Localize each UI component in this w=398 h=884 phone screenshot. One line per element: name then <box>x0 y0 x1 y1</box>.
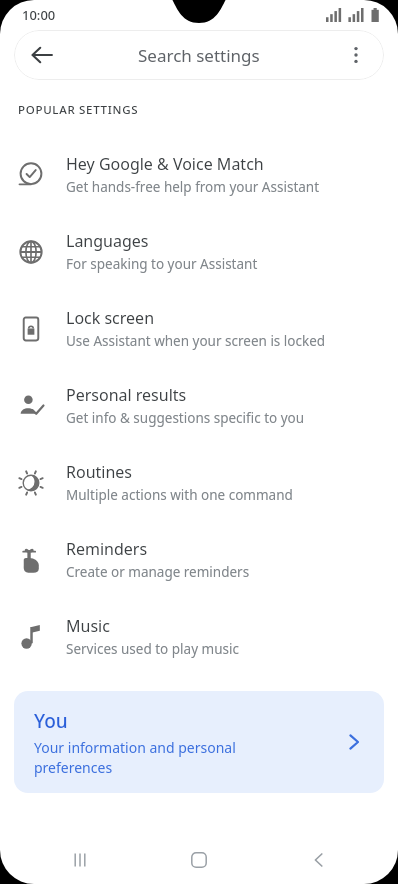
button[interactable]: Languages <box>0 213 398 290</box>
button[interactable]: Back <box>279 836 359 884</box>
staticText: Hey Google & Voice Match <box>66 153 264 175</box>
button[interactable]: Routines <box>0 444 398 521</box>
button[interactable]: Reminders <box>0 521 398 598</box>
button[interactable]: You <box>14 691 384 793</box>
button[interactable]: Back <box>14 30 384 80</box>
staticText: POPULAR SETTINGS <box>18 102 139 118</box>
staticText: Routines <box>66 461 133 483</box>
staticText: Multiple actions with one command <box>66 486 293 504</box>
staticText: You <box>34 708 68 734</box>
staticText: Personal results <box>66 384 187 406</box>
button[interactable]: Personal results <box>0 367 398 444</box>
staticText: For speaking to your Assistant <box>66 255 258 273</box>
button[interactable]: Home <box>159 836 239 884</box>
button[interactable]: Back <box>20 33 64 77</box>
button[interactable]: Recent apps <box>40 836 120 884</box>
staticText: Languages <box>66 230 149 252</box>
other: Open You settings <box>344 732 364 752</box>
button[interactable]: Music <box>0 598 398 675</box>
button[interactable]: More options <box>334 33 378 77</box>
staticText: Search settings <box>138 44 260 67</box>
staticText: Your information and personal preference… <box>34 738 314 777</box>
other: Signal and battery status <box>326 8 384 22</box>
staticText: 10:00 <box>22 6 56 24</box>
staticText: Use Assistant when your screen is locked <box>66 332 326 350</box>
button[interactable]: Hey Google & Voice Match <box>0 136 398 213</box>
staticText: Get info & suggestions specific to you <box>66 409 305 427</box>
staticText: Get hands-free help from your Assistant <box>66 178 320 196</box>
button[interactable]: Lock screen <box>0 290 398 367</box>
staticText: Services used to play music <box>66 640 239 658</box>
staticText: Create or manage reminders <box>66 563 250 581</box>
staticText: Lock screen <box>66 307 155 329</box>
staticText: Music <box>66 615 110 637</box>
staticText: Reminders <box>66 538 148 560</box>
